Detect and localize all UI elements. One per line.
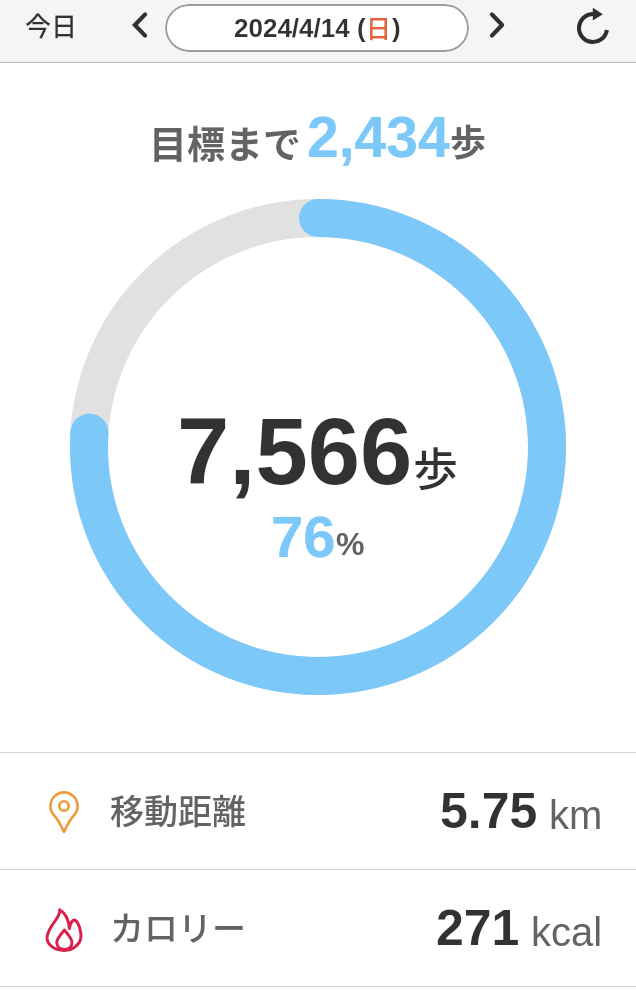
- staticText: %: [336, 526, 365, 562]
- staticText: 271: [436, 900, 520, 956]
- button[interactable]: 移動距離: [0, 753, 636, 869]
- staticText: 76: [271, 504, 336, 569]
- button[interactable]: 2024/4/14 (: [165, 4, 469, 52]
- staticText: ): [392, 13, 401, 42]
- button[interactable]: Refresh: [565, 0, 621, 56]
- staticText: kcal: [531, 910, 603, 955]
- button[interactable]: 今日: [7, 1, 95, 49]
- button[interactable]: Previous day: [117, 2, 163, 48]
- staticText: カロリー: [110, 902, 246, 951]
- staticText: 今日: [25, 6, 78, 44]
- button[interactable]: カロリー: [0, 870, 636, 986]
- staticText: 歩: [413, 434, 459, 499]
- staticText: km: [549, 793, 603, 838]
- staticText: 2024/4/14 (: [234, 13, 366, 42]
- button[interactable]: Next day: [474, 2, 520, 48]
- staticText: 歩: [450, 114, 487, 166]
- staticText: 5.75: [440, 783, 538, 839]
- staticText: 7,566: [177, 399, 413, 504]
- staticText: 2,434: [307, 105, 450, 169]
- staticText: 日: [366, 9, 392, 45]
- staticText: 移動距離: [110, 785, 246, 834]
- staticText: 目標まで: [149, 114, 302, 169]
